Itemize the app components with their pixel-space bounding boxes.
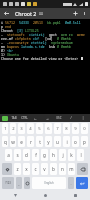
button[interactable]: n [59,163,66,175]
button[interactable]: . [68,177,74,189]
button[interactable]: i [63,136,70,147]
button[interactable]: q [2,136,8,147]
button[interactable]: Recent apps [60,190,90,200]
staticText: Chroot [1,28,17,32]
staticText: 56712 [5,20,15,24]
button[interactable]: y [45,136,52,147]
button[interactable]: 7 [54,123,61,134]
button[interactable]: t [36,136,43,147]
staticText: q [4,139,7,145]
button[interactable]: d [23,149,30,161]
staticText: [xd] [39,36,53,40]
staticText: ngrkrnmdaum [47,40,73,44]
button[interactable]: ?123 [2,177,14,189]
staticText: 4 [29,126,32,132]
staticText: n [61,166,64,172]
staticText: v [43,166,46,172]
button[interactable]: v [41,163,48,175]
staticText: English [44,181,54,185]
button[interactable]: → [41,114,53,122]
button[interactable]: ESC [53,114,65,122]
button[interactable]: Navigate up [2,9,11,18]
staticText: kb.pqb1 [43,20,61,24]
button[interactable]: f [32,149,39,161]
button[interactable]: u [54,136,61,147]
button[interactable]: 0 [81,123,88,134]
button[interactable]: Shift [2,163,12,175]
staticText: gpct [45,32,57,36]
staticText: d [25,152,28,158]
staticText: 7 [56,126,59,132]
staticText: . [70,181,72,186]
button[interactable]: Backspace [77,163,88,175]
staticText: 0m0.5s11 [61,20,81,24]
staticText: g [43,152,46,158]
staticText: - . [1,40,9,44]
button[interactable]: x [23,163,30,175]
staticText: rtrttrlj [29,40,47,44]
button[interactable]: 8 [63,123,70,134]
button[interactable]: 2 [10,123,16,134]
button[interactable]: 4 [27,123,34,134]
staticText: h [52,152,55,158]
button[interactable]: 1 [2,123,8,134]
staticText: a [7,152,10,158]
button[interactable]: Enter [76,177,88,189]
staticText: 0 [83,126,86,132]
button[interactable]: a [5,149,12,161]
button[interactable]: h [50,149,57,161]
staticText: k [70,152,73,158]
button[interactable]: c [32,163,39,175]
button[interactable]: r [27,136,34,147]
button[interactable]: 9 [72,123,79,134]
button[interactable]: s [14,149,21,161]
staticText: end [5,24,11,28]
button[interactable]: / [65,114,77,122]
button[interactable]: TAB [8,114,19,122]
staticText: z [16,166,19,172]
button[interactable]: l [77,149,84,161]
staticText: l [80,152,82,158]
staticText: m [69,166,74,172]
button[interactable]: p [81,136,88,147]
button[interactable]: z [14,163,21,175]
staticText: → [46,117,49,120]
button[interactable]: ← [30,114,41,122]
staticText: p [1,24,5,28]
staticText: Ubuntu [7,52,19,56]
button[interactable]: m [68,163,75,175]
button[interactable]: e [18,136,25,147]
button[interactable]: Home [30,190,60,200]
button[interactable]: More options [80,9,89,18]
staticText: j [62,152,64,158]
staticText: CTRL [21,116,28,120]
staticText: Chroot 2 [15,10,37,17]
button[interactable]: 6 [45,123,52,134]
button[interactable]: o [72,136,79,147]
staticText: w [11,139,15,145]
button[interactable]: k [68,149,75,161]
staticText: LITOL25 [23,28,39,32]
button[interactable]: 3 [18,123,25,134]
button[interactable]: g [41,149,48,161]
staticText: ksb [45,44,55,48]
staticText: 6 [47,126,50,132]
staticText: 8 [65,126,68,132]
button[interactable]: English [32,177,66,189]
button[interactable]: | [77,114,89,122]
button[interactable]: Back [0,190,30,200]
staticText: o [74,139,77,145]
staticText: x [25,166,28,172]
button[interactable]: Keyboard toggle [2,116,8,121]
button[interactable]: w [10,136,16,147]
button[interactable]: j [59,149,66,161]
button[interactable]: b [50,163,57,175]
staticText: 0 0bmhb [53,36,71,40]
staticText: c [34,166,37,172]
button[interactable]: Emoji [24,177,30,189]
button[interactable]: , [16,177,22,189]
button[interactable]: CTRL [19,114,30,122]
button[interactable]: New session [71,9,80,18]
button[interactable]: 5 [36,123,43,134]
